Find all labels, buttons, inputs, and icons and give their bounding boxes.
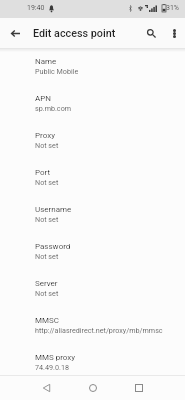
button[interactable]: Home: [81, 376, 105, 400]
button[interactable]: Server: [0, 271, 185, 308]
button[interactable]: APN: [0, 86, 185, 123]
button[interactable]: More options: [162, 21, 185, 45]
staticText: MMSC: [35, 316, 59, 325]
button[interactable]: Navigate up: [3, 21, 27, 45]
staticText: Password: [35, 242, 71, 251]
button[interactable]: Back: [34, 376, 58, 400]
button[interactable]: MMS proxy: [0, 345, 185, 382]
staticText: Name: [35, 57, 57, 66]
staticText: Port: [35, 168, 51, 177]
staticText: 74.49.0.18: [35, 363, 69, 371]
button[interactable]: Password: [0, 234, 185, 271]
staticText: Edit access point: [33, 27, 116, 40]
staticText: Public Mobile: [35, 67, 79, 75]
staticText: Not set: [35, 289, 59, 297]
staticText: Not set: [35, 141, 59, 149]
button[interactable]: Username: [0, 197, 185, 234]
button[interactable]: Proxy: [0, 123, 185, 160]
staticText: Server: [35, 279, 58, 288]
button[interactable]: Port: [0, 160, 185, 197]
staticText: Not set: [35, 252, 59, 260]
staticText: Username: [35, 205, 72, 214]
staticText: Not set: [35, 178, 59, 186]
staticText: 31%: [166, 4, 179, 12]
staticText: sp.mb.com: [35, 104, 72, 112]
button[interactable]: Recent apps: [127, 376, 151, 400]
button[interactable]: Search: [139, 21, 163, 45]
staticText: Not set: [35, 215, 59, 223]
staticText: http://aliasredirect.net/proxy/mb/mmsc: [35, 326, 163, 334]
staticText: 19:40: [27, 4, 45, 12]
staticText: APN: [35, 94, 51, 103]
button[interactable]: Name: [0, 49, 185, 86]
staticText: Proxy: [35, 131, 55, 140]
button[interactable]: MMSC: [0, 308, 185, 345]
staticText: MMS proxy: [35, 353, 76, 362]
